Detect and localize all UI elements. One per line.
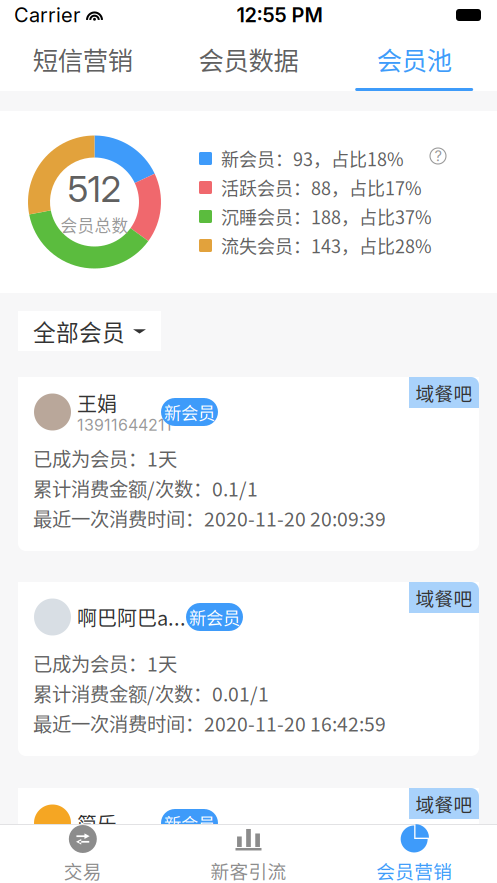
button[interactable]: 说明 (423, 141, 453, 171)
staticText: 全部会员 (33, 315, 125, 347)
button[interactable]: 王娟 (18, 377, 479, 551)
staticText: 累计消费金额/次数：0.01/1 (33, 679, 269, 707)
staticText: 王娟 (77, 388, 117, 417)
staticText: 最近一次消费时间：2020-11-20 16:42:59 (33, 709, 386, 737)
staticText: Carrier (14, 3, 80, 27)
button[interactable]: 会员池 (331, 30, 497, 91)
staticText: 最近一次消费时间：2020-11-20 20:09:39 (33, 504, 386, 532)
staticText: 新客引流 (210, 857, 286, 883)
staticText: 短信营销 (33, 41, 133, 77)
staticText: ? (434, 147, 441, 165)
staticText: 已成为会员：1天 (33, 444, 177, 472)
button[interactable]: 简乐 (18, 788, 479, 883)
staticText: 会员总数 (60, 213, 128, 237)
staticText: 活跃会员：88，占比17% (221, 174, 422, 201)
staticText: 新会员：93，占比18% (221, 145, 404, 172)
staticText: 512 (67, 167, 121, 211)
staticText: 已成为会员：1天 (33, 855, 177, 883)
button[interactable]: 短信营销 (0, 30, 166, 91)
staticText: 域餐吧 (415, 379, 472, 406)
staticText: 已成为会员：1天 (33, 649, 177, 677)
button[interactable]: 交易 (0, 825, 166, 883)
staticText: 会员营销 (376, 857, 452, 883)
staticText: 新会员 (189, 604, 240, 630)
staticText: 啊巴阿巴a... (77, 602, 186, 631)
button[interactable]: 啊巴阿巴a... (18, 582, 479, 756)
staticText: 会员池 (377, 41, 452, 77)
staticText: 交易 (64, 857, 102, 883)
staticText: 域餐吧 (415, 790, 472, 817)
staticText: 简乐 (77, 808, 117, 837)
staticText: 12:55 PM (236, 3, 322, 27)
staticText: 流失会员：143，占比28% (221, 232, 432, 259)
button[interactable]: 新客引流 (166, 825, 331, 883)
staticText: 沉睡会员：188，占比37% (221, 203, 432, 230)
button[interactable]: 会员数据 (166, 30, 331, 91)
staticText: 新会员 (164, 399, 215, 425)
staticText: 新会员 (164, 810, 215, 836)
staticText: 会员数据 (198, 41, 298, 77)
staticText: 累计消费金额/次数：0.1/1 (33, 474, 258, 502)
button[interactable]: 全部会员 (18, 311, 161, 351)
button[interactable]: 会员营销 (331, 825, 497, 883)
staticText: 域餐吧 (415, 584, 472, 611)
staticText: 13911644211 (77, 415, 172, 435)
